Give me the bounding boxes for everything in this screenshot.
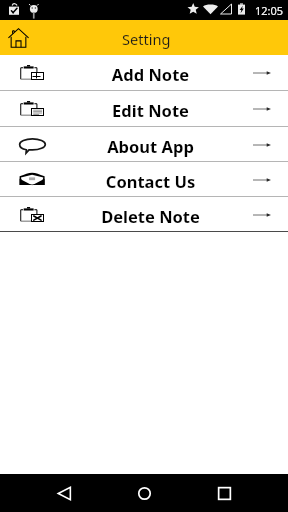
button[interactable]: Contact Us — [0, 162, 288, 197]
button[interactable]: Add Note — [0, 55, 288, 91]
button[interactable]: Back — [24, 474, 104, 512]
button[interactable]: Delete Note — [0, 197, 288, 232]
staticText: About App — [46, 135, 255, 157]
staticText: 12:05 — [255, 3, 284, 18]
staticText: Contact Us — [46, 170, 255, 192]
staticText: Add Note — [46, 63, 255, 85]
button[interactable]: About App — [0, 127, 288, 162]
staticText: Delete Note — [46, 205, 255, 227]
button[interactable]: Recents — [184, 474, 264, 512]
staticText: Setting — [122, 29, 171, 49]
button[interactable]: Home — [8, 27, 29, 48]
staticText: Edit Note — [46, 99, 255, 121]
button[interactable]: Home — [104, 474, 184, 512]
button[interactable]: Edit Note — [0, 91, 288, 127]
